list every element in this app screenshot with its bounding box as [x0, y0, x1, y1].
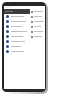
- button[interactable]: [4, 24, 30, 29]
- button[interactable]: [30, 24, 45, 29]
- button[interactable]: [4, 39, 30, 44]
- button[interactable]: [30, 34, 45, 39]
- button[interactable]: [4, 44, 30, 49]
- button[interactable]: [30, 14, 45, 19]
- button[interactable]: [4, 49, 30, 54]
- button[interactable]: [4, 9, 30, 14]
- button[interactable]: [30, 19, 45, 24]
- button[interactable]: [30, 29, 45, 34]
- button[interactable]: [4, 19, 30, 24]
- button[interactable]: [4, 14, 30, 19]
- button[interactable]: [4, 29, 30, 34]
- button[interactable]: [30, 9, 45, 14]
- button[interactable]: [4, 34, 30, 39]
